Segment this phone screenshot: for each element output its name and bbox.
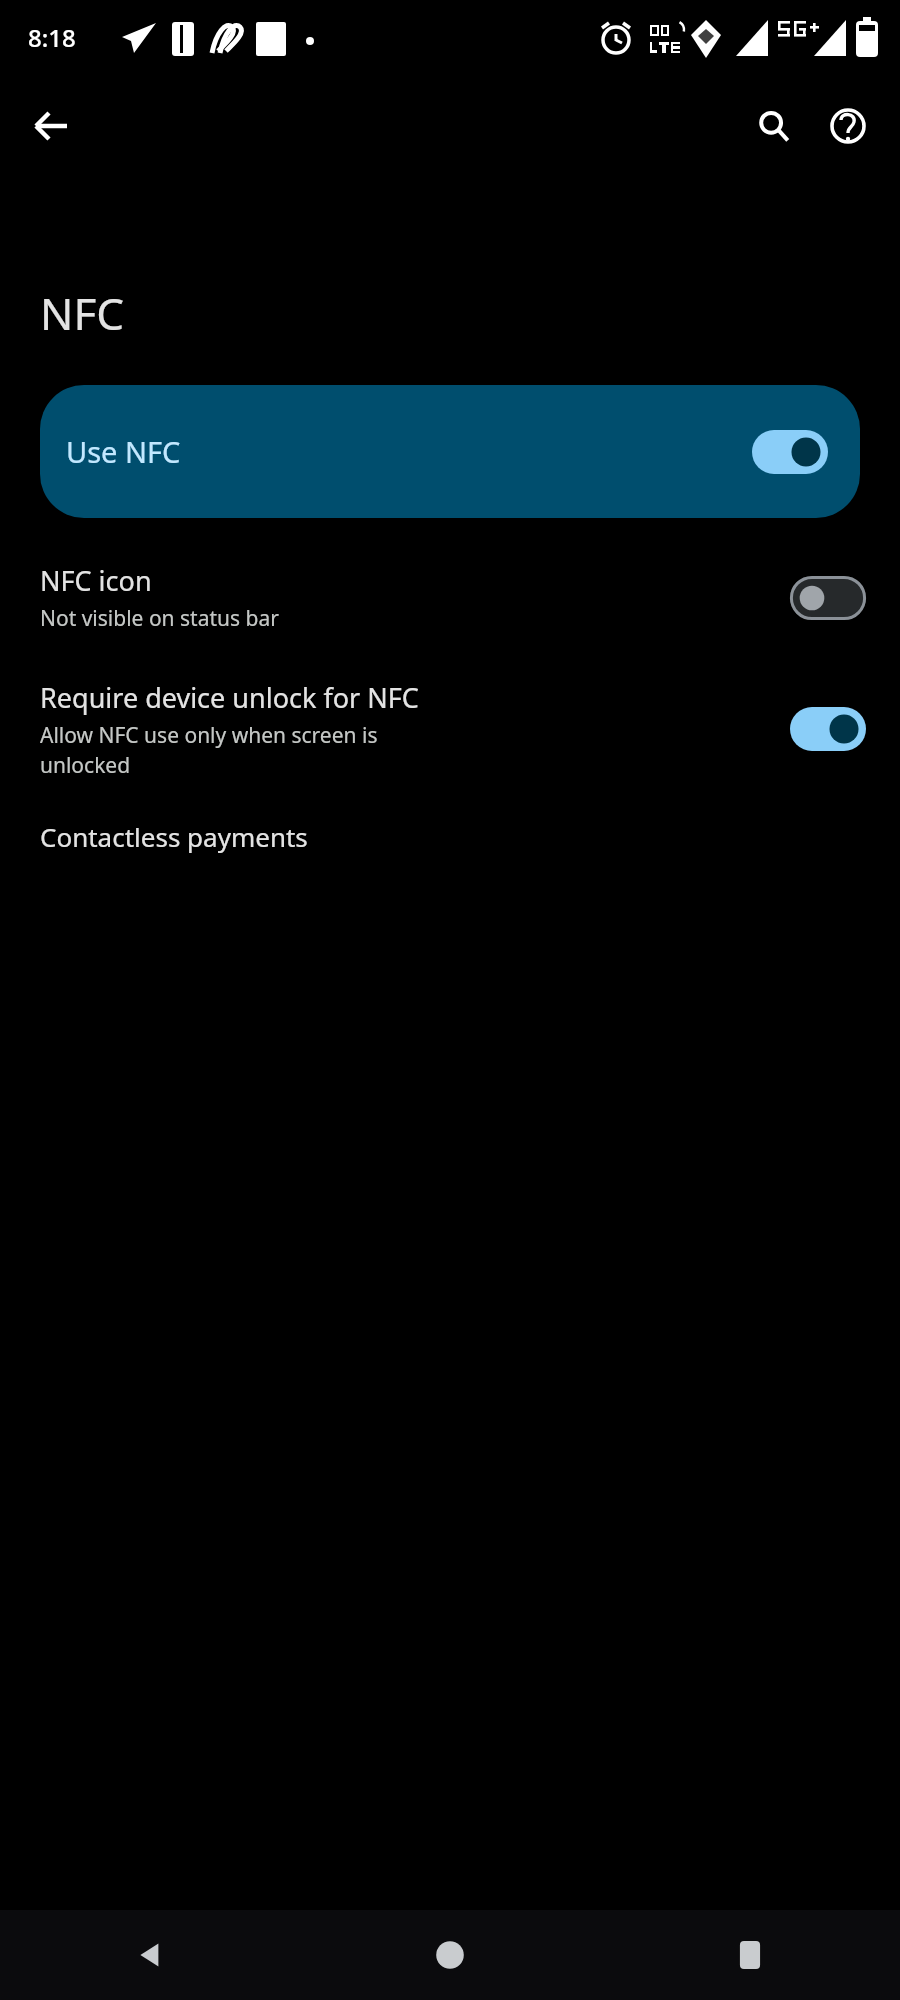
button[interactable]: Off bbox=[790, 576, 866, 620]
button[interactable]: On bbox=[790, 707, 866, 751]
staticText: Not visible on status bar bbox=[40, 604, 279, 633]
button[interactable]: On bbox=[752, 430, 828, 474]
staticText: Contactless payments bbox=[40, 819, 308, 854]
button[interactable]: NFC icon bbox=[0, 558, 900, 637]
button[interactable]: Recent apps bbox=[600, 1910, 900, 2000]
staticText: Require device unlock for NFC bbox=[40, 679, 419, 716]
button[interactable]: Search bbox=[742, 94, 806, 158]
button[interactable]: Help bbox=[816, 94, 880, 158]
button[interactable]: Require device unlock for NFC bbox=[0, 675, 900, 783]
button[interactable]: Back bbox=[18, 94, 82, 158]
button[interactable]: Contactless payments bbox=[0, 813, 900, 864]
staticText: 8:18 bbox=[28, 21, 76, 54]
staticText: NFC icon bbox=[40, 562, 152, 599]
staticText: Use NFC bbox=[66, 432, 181, 471]
staticText: Allow NFC use only when screen is unlock… bbox=[40, 721, 470, 779]
button[interactable]: Back bbox=[0, 1910, 300, 2000]
staticText: NFC bbox=[40, 283, 125, 343]
button[interactable]: Use NFC bbox=[40, 385, 860, 518]
button[interactable]: Home bbox=[300, 1910, 600, 2000]
